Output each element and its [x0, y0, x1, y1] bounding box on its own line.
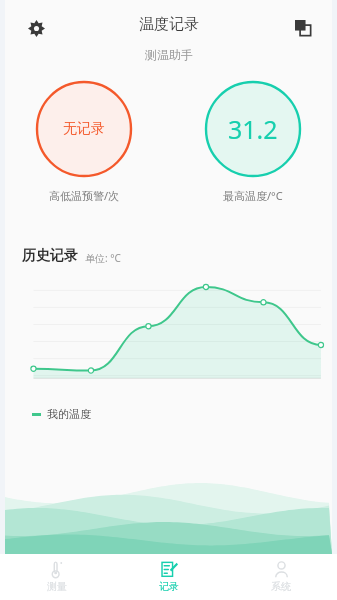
button[interactable]: 无记录: [0, 80, 168, 203]
button[interactable]: 31.2: [168, 80, 337, 203]
staticText: 历史记录: [22, 247, 78, 265]
button[interactable]: Copy records: [287, 12, 319, 44]
staticText: 无记录: [63, 120, 105, 138]
staticText: 温度记录: [139, 15, 199, 34]
staticText: 最高温度/°C: [223, 188, 283, 203]
button[interactable]: 测量: [0, 554, 113, 600]
staticText: 测量: [47, 580, 67, 593]
staticText: 31.2: [228, 112, 278, 146]
button[interactable]: 系统: [225, 554, 337, 600]
staticText: 测温助手: [145, 47, 193, 62]
button[interactable]: 记录: [113, 554, 225, 600]
button[interactable]: Settings: [20, 12, 52, 44]
staticText: 高低温预警/次: [49, 188, 120, 203]
staticText: 单位: °C: [85, 251, 121, 265]
staticText: 我的温度: [47, 407, 91, 421]
staticText: 记录: [159, 580, 179, 593]
staticText: 系统: [271, 580, 291, 593]
